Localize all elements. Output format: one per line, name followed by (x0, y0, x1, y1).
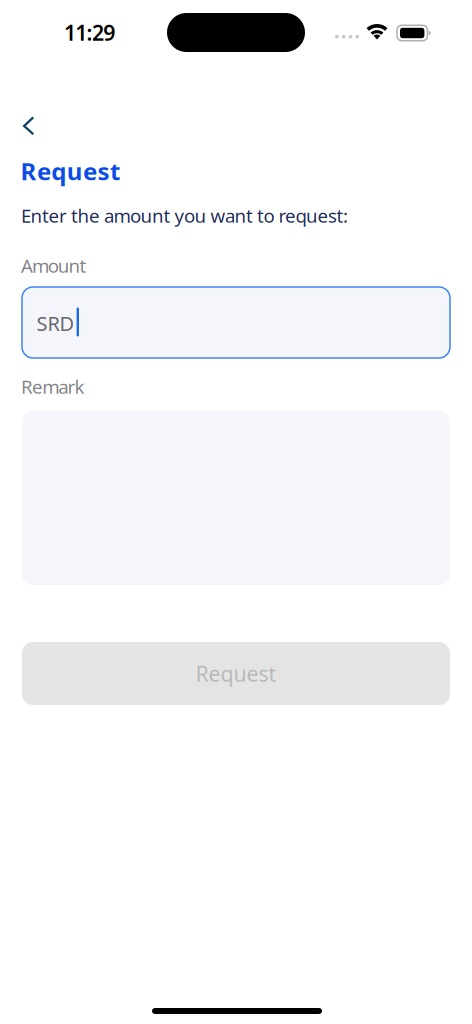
button[interactable]: Request (22, 642, 450, 705)
staticText: Amount (21, 253, 86, 278)
staticText: Request (20, 155, 120, 187)
staticText: Enter the amount you want to request: (21, 203, 348, 228)
button[interactable]: Back (7, 104, 51, 148)
staticText: Remark (21, 374, 84, 399)
staticText: SRD (36, 310, 74, 337)
button[interactable]: Amount (22, 287, 450, 358)
staticText: Request (195, 659, 276, 688)
staticText: 11:29 (64, 18, 115, 47)
